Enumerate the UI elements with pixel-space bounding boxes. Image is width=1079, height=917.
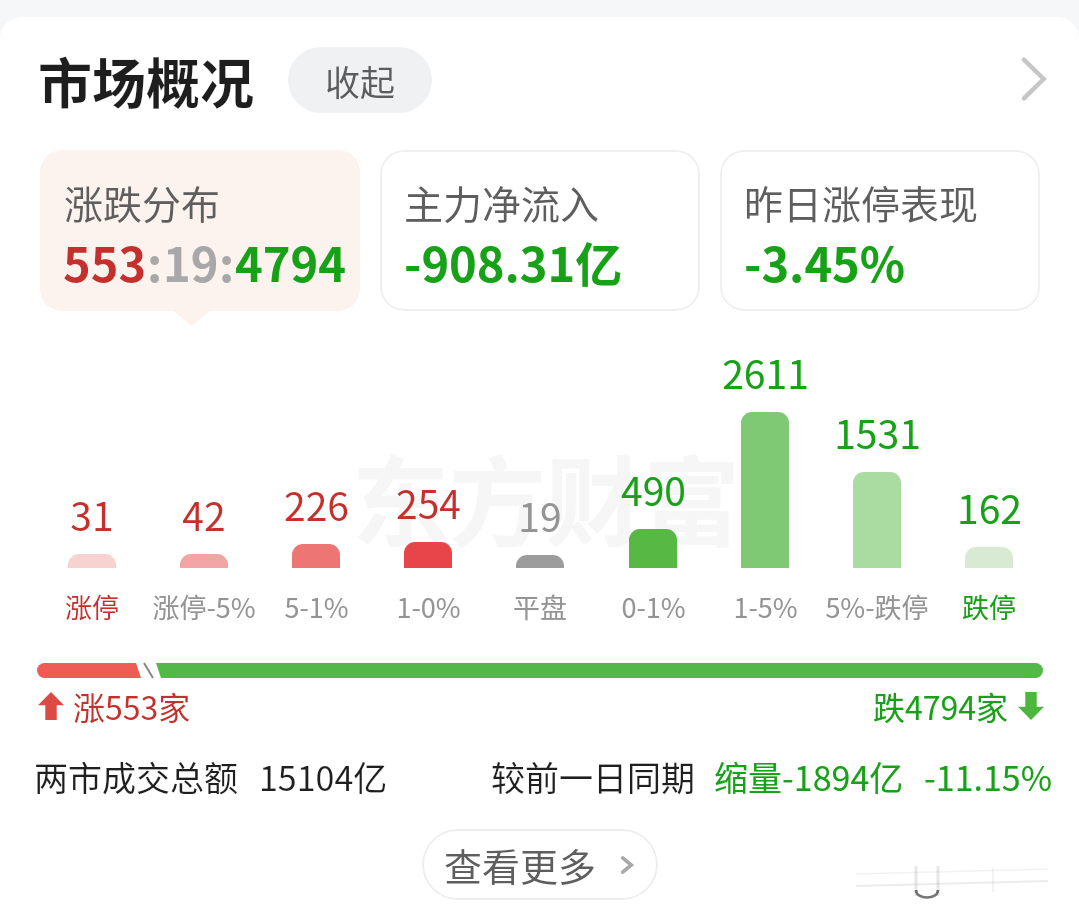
staticText: 2611 <box>722 344 809 400</box>
button[interactable]: 主力净流入 <box>380 150 700 311</box>
staticText: 查看更多 <box>444 837 597 892</box>
staticText: 涨停 <box>65 587 119 626</box>
staticText: -908.31亿 <box>404 227 623 295</box>
staticText: 平盘 <box>513 587 567 626</box>
staticText: 1531 <box>834 404 921 460</box>
staticText: 主力净流入 <box>404 174 600 230</box>
staticText: 涨停-5% <box>152 587 256 626</box>
button[interactable]: 查看更多 <box>422 829 658 900</box>
staticText: 跌4794家 <box>873 683 1009 729</box>
staticText: : <box>147 227 163 295</box>
staticText: 收起 <box>325 55 396 106</box>
staticText: 1-0% <box>396 587 461 626</box>
staticText: 两市成交总额 <box>34 752 238 801</box>
staticText: 5%-跌停 <box>825 587 929 626</box>
staticText: 涨跌分布 <box>64 174 221 230</box>
staticText: 15104亿 <box>259 752 388 801</box>
staticText: 较前一日同期 <box>491 752 695 801</box>
staticText: 4794 <box>235 227 346 295</box>
staticText: 0-1% <box>621 587 686 626</box>
button[interactable]: 昨日涨停表现 <box>720 150 1040 311</box>
button[interactable]: 涨跌分布 <box>40 150 360 311</box>
staticText: 42 <box>182 486 226 542</box>
staticText: 162 <box>957 479 1022 535</box>
staticText: 跌停 <box>962 587 1016 626</box>
staticText: 1-5% <box>733 587 798 626</box>
staticText: 涨553家 <box>73 683 191 729</box>
staticText: 490 <box>621 461 686 517</box>
staticText: : <box>219 227 235 295</box>
button[interactable]: 收起 <box>288 47 432 113</box>
staticText: 昨日涨停表现 <box>744 174 979 230</box>
staticText: 缩量-1894亿 <box>714 752 904 801</box>
staticText: 19 <box>163 227 219 295</box>
staticText: 254 <box>396 474 461 530</box>
staticText: 553 <box>63 227 147 295</box>
staticText: -3.45% <box>744 227 906 295</box>
button[interactable]: More <box>1012 57 1056 101</box>
staticText: 226 <box>284 476 349 532</box>
staticText: 5-1% <box>284 587 349 626</box>
staticText: 东方财富 <box>352 425 740 565</box>
staticText: 31 <box>70 486 114 542</box>
staticText: 19 <box>518 487 562 543</box>
staticText: -11.15% <box>924 752 1053 801</box>
staticText: 市场概况 <box>38 41 254 119</box>
